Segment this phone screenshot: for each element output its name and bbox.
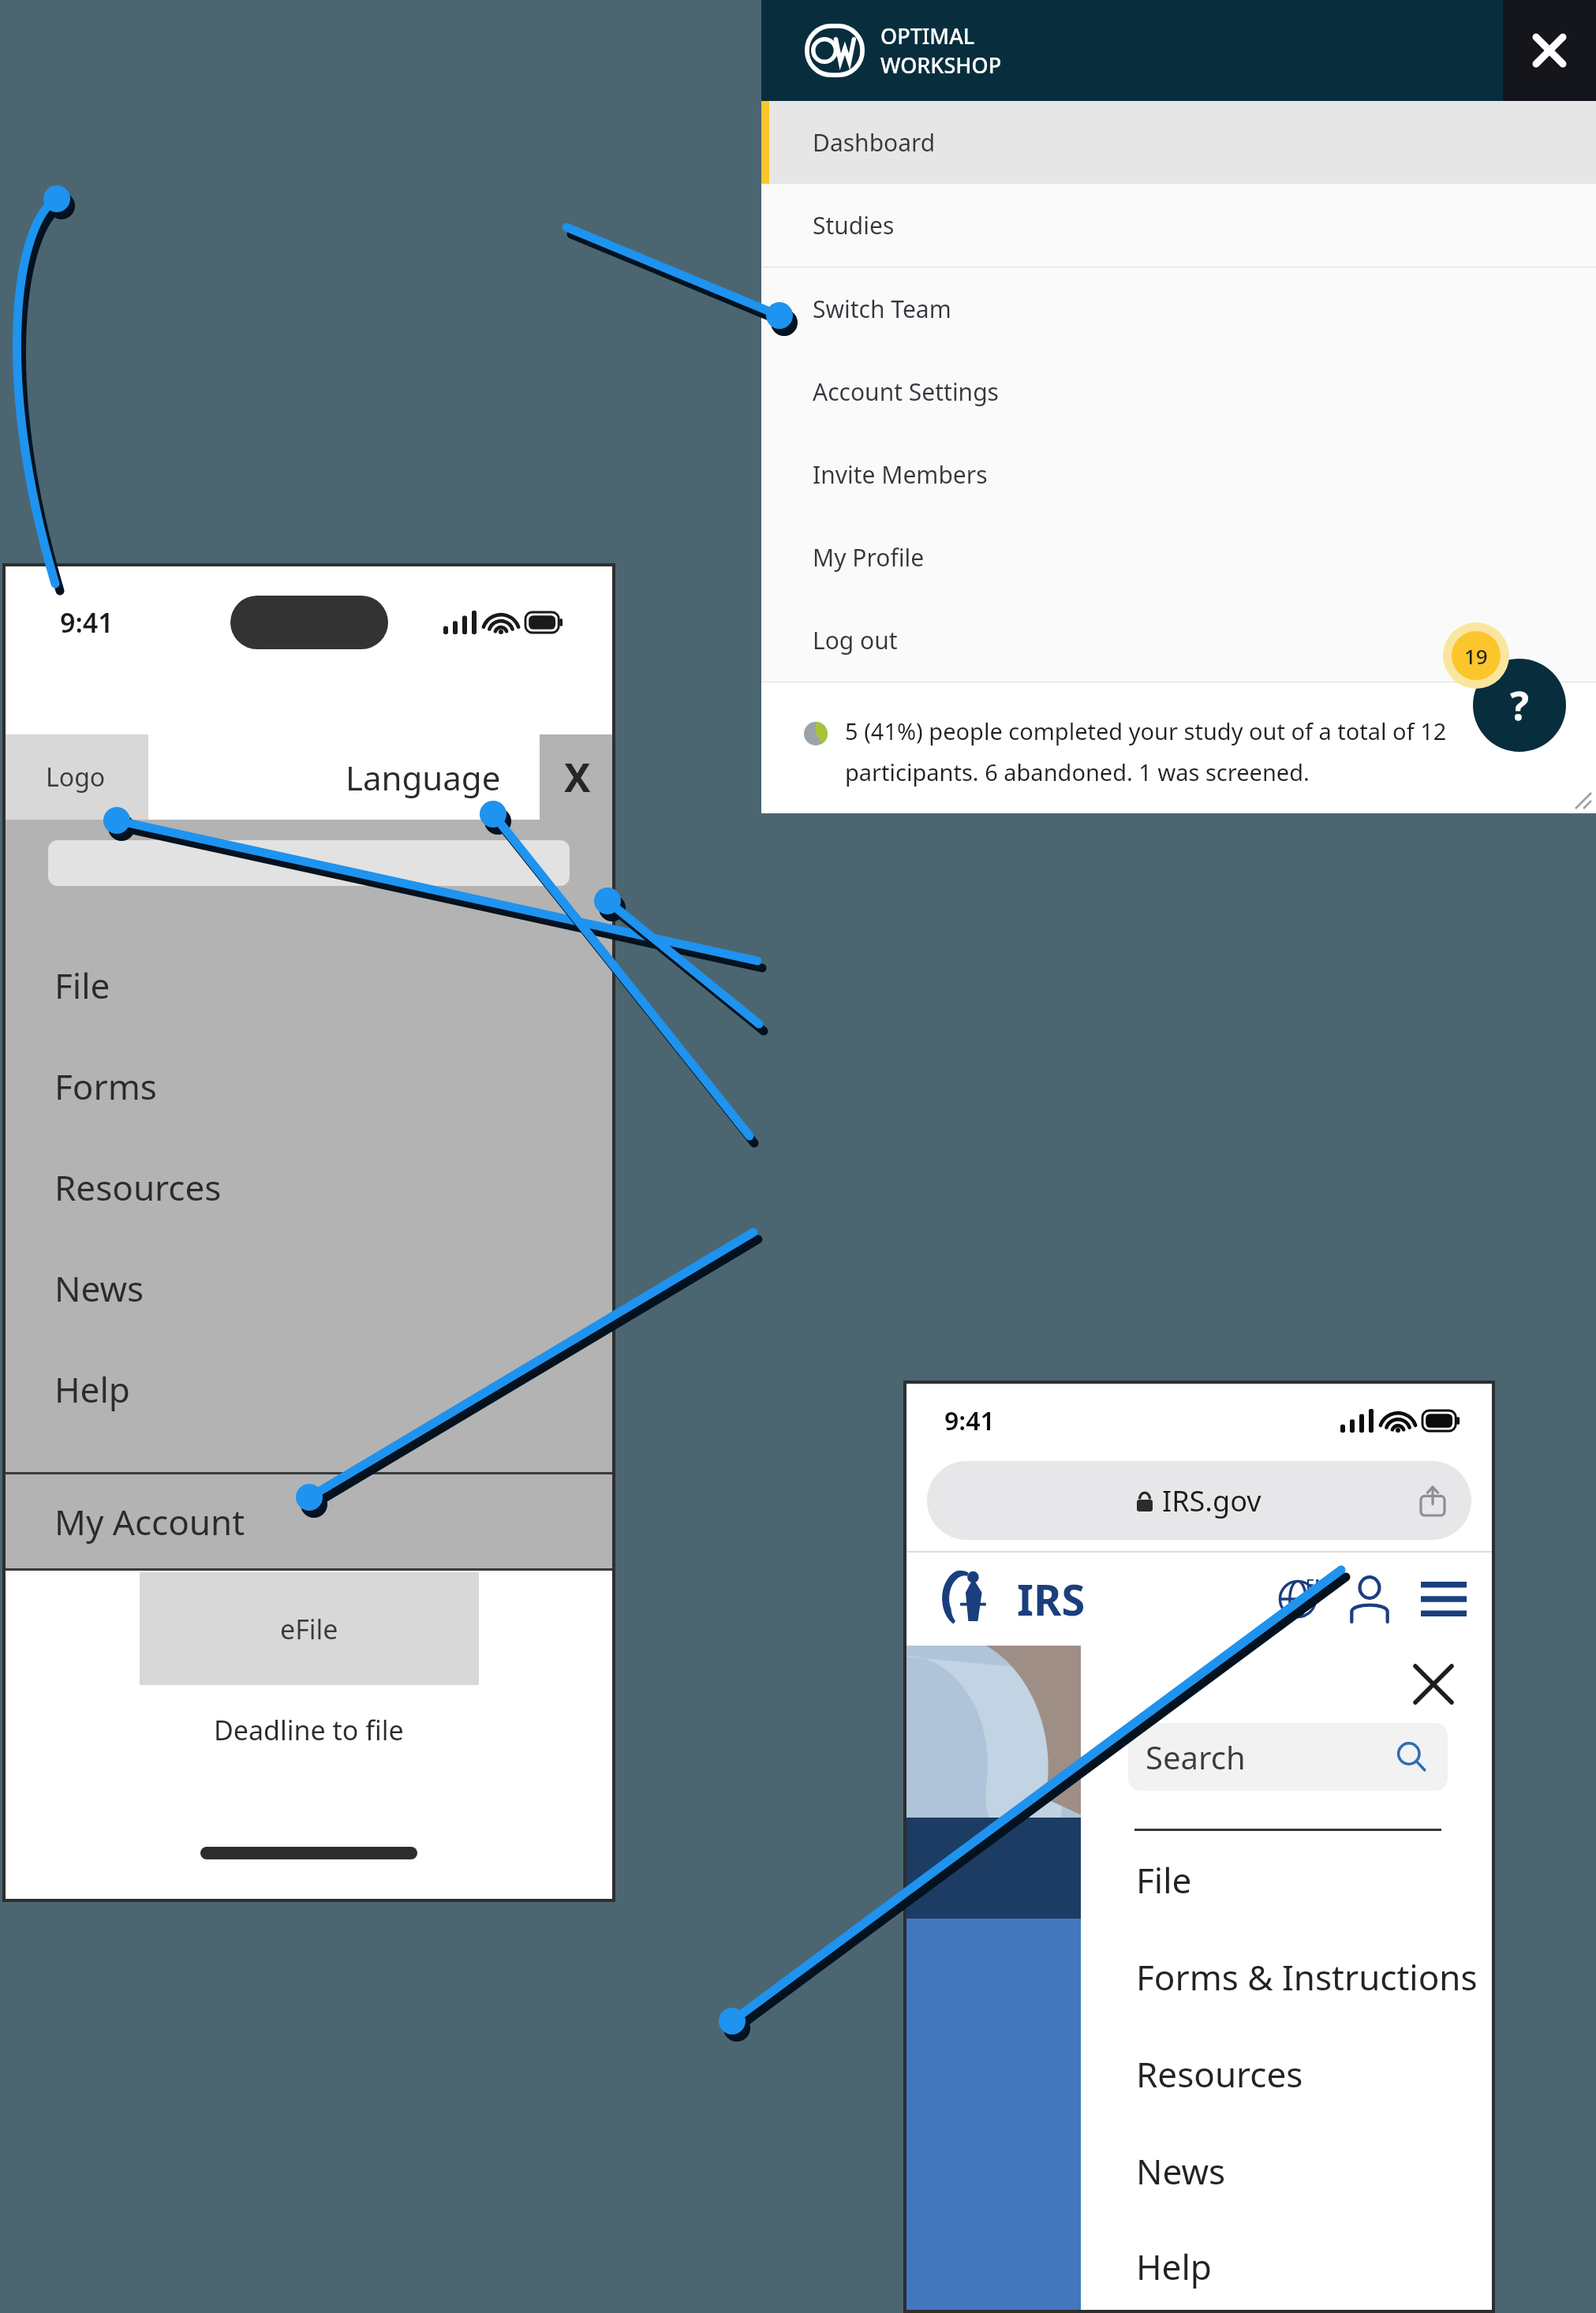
button[interactable]: Help [1081,2219,1495,2313]
staticText: eFile [280,1611,338,1647]
staticText: News [1136,2147,1226,2195]
button[interactable]: Help [2,1339,615,1440]
staticText: EN [1306,1574,1327,1595]
staticText: News [54,1265,144,1312]
staticText: 9:41 [944,1403,995,1438]
staticText: Search [1146,1736,1246,1778]
button[interactable]: OPTIMAL [761,0,1503,101]
staticText: Logo [46,760,106,794]
button[interactable]: Resources [1081,2025,1495,2122]
staticText: File [54,962,110,1009]
button[interactable]: Close menu [540,734,615,820]
button[interactable]: Search [1128,1723,1448,1791]
button[interactable]: File [1081,1831,1495,1928]
staticText: Invite Members [813,458,988,491]
staticText: Dashboard [813,126,936,159]
button[interactable]: Switch Team [761,267,1596,350]
staticText: IRS [1017,1570,1086,1628]
button[interactable]: My Account [2,1472,615,1571]
button[interactable]: Account [1344,1571,1396,1627]
staticText: We [1168,1963,1232,2019]
staticText: T [1187,2075,1212,2131]
button[interactable]: Log out [761,599,1596,682]
staticText: OPTIMAL [880,21,975,50]
staticText: Forms [54,1063,157,1110]
staticText: File [1136,1856,1192,1904]
staticText: Und [1157,2019,1241,2075]
button[interactable] [48,840,570,886]
button[interactable]: Forms & Instructions [1081,1928,1495,2025]
staticText: Log out [813,624,898,656]
button[interactable]: My Profile [761,516,1596,599]
staticText: Resources [54,1164,222,1211]
staticText: ? [1510,678,1529,732]
staticText: 5 (41%) people completed your study out … [845,716,1501,787]
staticText: Resources [1136,2050,1303,2098]
button[interactable]: File [2,935,615,1036]
button[interactable]: Close [1503,0,1596,101]
staticText: Help [54,1366,130,1413]
staticText: Forms & Instructions [1136,1953,1478,2001]
staticText: My Profile [813,541,925,574]
button[interactable]: Help [1473,659,1566,752]
staticText: Studies [813,209,895,241]
staticText: Switch Team [813,293,951,325]
button[interactable]: Invite Members [761,433,1596,516]
staticText: WORKSHOP [880,50,1002,80]
button[interactable]: Studies [761,184,1596,267]
button[interactable]: Resources [2,1137,615,1238]
button[interactable]: Menu [1416,1577,1471,1621]
button[interactable]: News [2,1238,615,1339]
staticText: Account Settings [813,376,999,408]
button[interactable]: Dashboard [761,101,1596,184]
button[interactable]: IRS.gov [927,1461,1471,1540]
staticText: X [564,750,591,804]
button[interactable]: News [1081,2122,1495,2219]
button[interactable]: Logo [2,734,148,820]
button[interactable]: Language [346,755,501,800]
staticText: IRS.gov [1162,1482,1261,1520]
button[interactable]: IRS [941,1567,1086,1631]
staticText: My Account [54,1498,245,1545]
staticText: 19 [1464,642,1488,670]
button[interactable]: eFile [140,1572,479,1685]
button[interactable]: Language English [1273,1574,1323,1624]
staticText: Help [1136,2243,1212,2290]
button[interactable]: Close menu [1081,1646,1495,1723]
button[interactable]: Account Settings [761,350,1596,433]
button[interactable]: Forms [2,1036,615,1137]
staticText: Deadline to file [214,1712,404,1748]
staticText: 9:41 [60,604,114,641]
